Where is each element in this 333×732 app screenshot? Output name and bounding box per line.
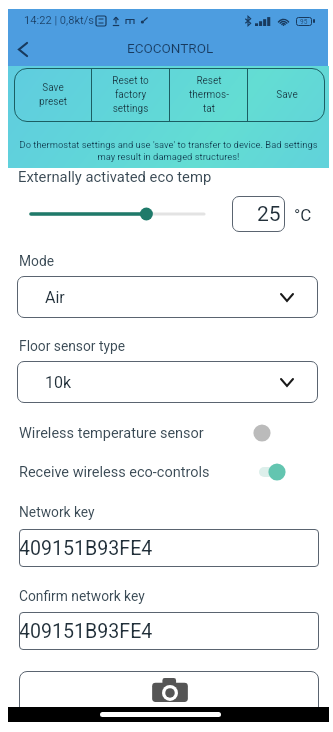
button[interactable]: Receive wireless eco-controls bbox=[8, 458, 329, 486]
staticText: 409151B93FE4 bbox=[19, 537, 153, 560]
staticText: 10k bbox=[45, 373, 72, 392]
staticText: Reset to factory settings bbox=[112, 75, 149, 115]
staticText: Floor sensor type bbox=[19, 338, 126, 354]
button[interactable]: Wireless temperature sensor bbox=[8, 419, 329, 447]
button[interactable]: 25 bbox=[232, 196, 285, 232]
staticText: Externally activated eco temp bbox=[18, 168, 212, 185]
button[interactable] bbox=[19, 671, 319, 721]
staticText: Save bbox=[276, 89, 298, 101]
button[interactable]: 409151B93FE4 bbox=[19, 612, 319, 650]
button[interactable]: Save preset bbox=[14, 68, 91, 122]
staticText: 25 bbox=[257, 202, 281, 227]
button[interactable]: 409151B93FE4 bbox=[19, 529, 319, 567]
staticText: Do thermostat settings and use 'save' to… bbox=[8, 139, 329, 162]
staticText: Reset thermos- tat bbox=[189, 75, 229, 115]
staticText: 95 bbox=[300, 18, 308, 26]
button[interactable]: Air bbox=[17, 276, 318, 318]
staticText: Air bbox=[45, 288, 65, 307]
staticText: °C bbox=[294, 205, 312, 225]
staticText: Confirm network key bbox=[19, 588, 145, 604]
staticText: Save preset bbox=[39, 82, 67, 108]
staticText: ECOCONTROL bbox=[127, 40, 214, 56]
button[interactable]: 10k bbox=[17, 361, 318, 403]
button[interactable]: Screenshot bbox=[151, 675, 189, 706]
staticText: 409151B93FE4 bbox=[19, 620, 153, 643]
button[interactable]: Reset thermos- tat bbox=[170, 68, 247, 122]
staticText: 14:22 | 0,8kt/s bbox=[24, 14, 95, 27]
staticText: Mode bbox=[19, 253, 55, 269]
button[interactable]: Back bbox=[8, 34, 38, 64]
button[interactable]: Reset to factory settings bbox=[92, 68, 169, 122]
button[interactable]: Save bbox=[248, 68, 325, 122]
staticText: Network key bbox=[19, 504, 95, 520]
staticText: Receive wireless eco-controls bbox=[19, 464, 210, 481]
staticText: Wireless temperature sensor bbox=[19, 425, 204, 442]
